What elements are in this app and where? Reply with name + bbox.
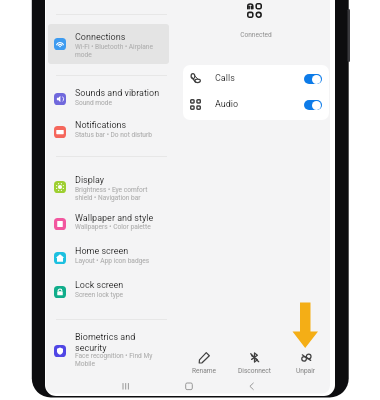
staticText: Unpair <box>296 367 316 375</box>
staticText: Mobile <box>75 360 95 368</box>
staticText: Rename <box>192 367 217 375</box>
button[interactable] <box>48 24 169 64</box>
button[interactable]: Disconnect <box>230 348 278 375</box>
staticText: Brightness • Eye comfort <box>75 186 148 194</box>
staticText: Layout • App icon badges <box>75 257 150 265</box>
button[interactable] <box>54 123 168 141</box>
other: Connected device <box>247 3 262 18</box>
staticText: Wallpaper and style <box>75 213 170 224</box>
button[interactable] <box>54 342 168 360</box>
button[interactable] <box>54 215 168 233</box>
button[interactable]: Audio <box>183 91 329 118</box>
button[interactable] <box>54 35 168 53</box>
staticText: Wi-Fi • Bluetooth • Airplane <box>75 43 153 51</box>
staticText: Notifications <box>75 120 170 131</box>
button[interactable] <box>54 249 168 267</box>
staticText: Disconnect <box>238 367 271 375</box>
staticText: Home screen <box>75 246 170 257</box>
staticText: Connections <box>75 32 170 43</box>
button[interactable] <box>54 90 168 108</box>
staticText: Sounds and vibration <box>75 88 170 99</box>
staticText: Display <box>75 175 170 186</box>
staticText: mode <box>75 51 92 59</box>
button[interactable] <box>54 283 168 301</box>
button[interactable]: Calls <box>183 65 329 92</box>
staticText: Wallpapers • Color palette <box>75 223 151 231</box>
staticText: shield • Navigation bar <box>75 194 141 202</box>
button[interactable] <box>54 178 168 196</box>
staticText: Face recognition • Find My <box>75 352 153 360</box>
staticText: Biometrics and security <box>75 332 170 354</box>
staticText: Lock screen <box>75 280 170 291</box>
staticText: Calls <box>215 73 235 84</box>
button[interactable]: Unpair <box>282 348 330 375</box>
button[interactable]: Rename <box>180 348 228 375</box>
staticText: Sound mode <box>75 99 113 107</box>
staticText: Connected <box>196 31 316 39</box>
staticText: Audio <box>215 99 239 110</box>
staticText: Screen lock type <box>75 291 124 299</box>
staticText: Status bar • Do not disturb <box>75 131 152 139</box>
